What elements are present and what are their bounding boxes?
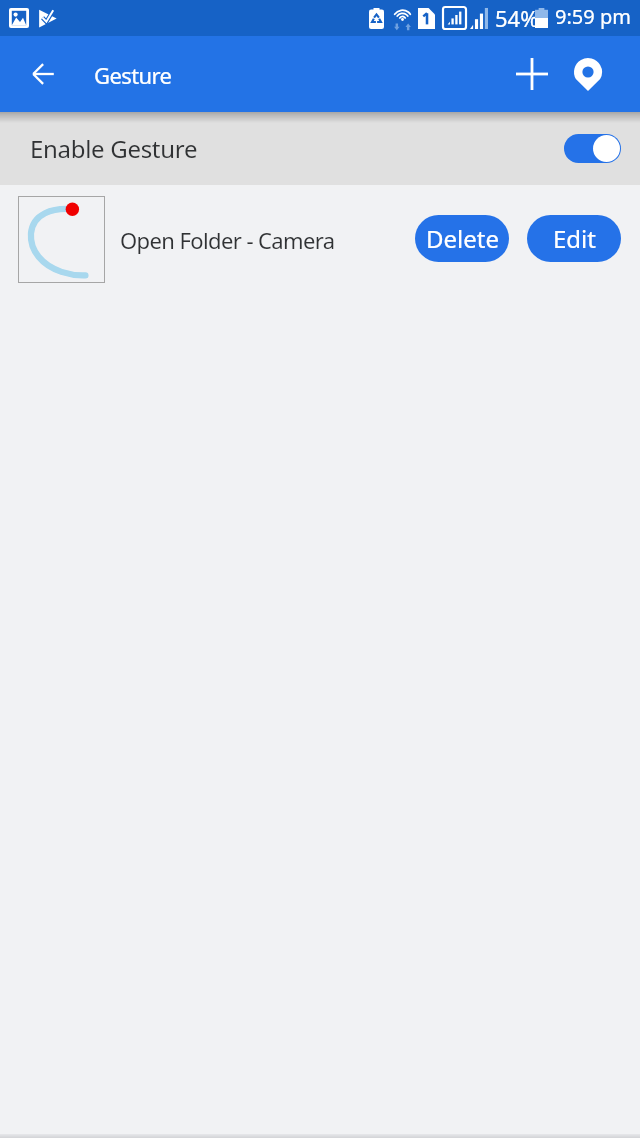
staticText: Delete [426, 222, 499, 255]
button[interactable]: Location [564, 50, 612, 98]
button[interactable]: Back [20, 51, 66, 97]
button[interactable]: Edit [527, 215, 621, 262]
button[interactable]: Enable Gesture [0, 112, 640, 185]
staticText: Edit [553, 222, 596, 255]
staticText: Gesture [94, 60, 172, 90]
staticText: Open Folder - Camera [120, 225, 335, 255]
button[interactable]: Add [508, 50, 556, 98]
staticText: Enable Gesture [30, 132, 198, 165]
button[interactable]: Delete [415, 215, 509, 262]
staticText: 9:59 pm [555, 3, 631, 30]
button[interactable]: Open Folder - Camera [0, 185, 640, 291]
button[interactable]: Enable Gesture toggle [564, 134, 621, 163]
staticText: 54% [495, 3, 539, 33]
